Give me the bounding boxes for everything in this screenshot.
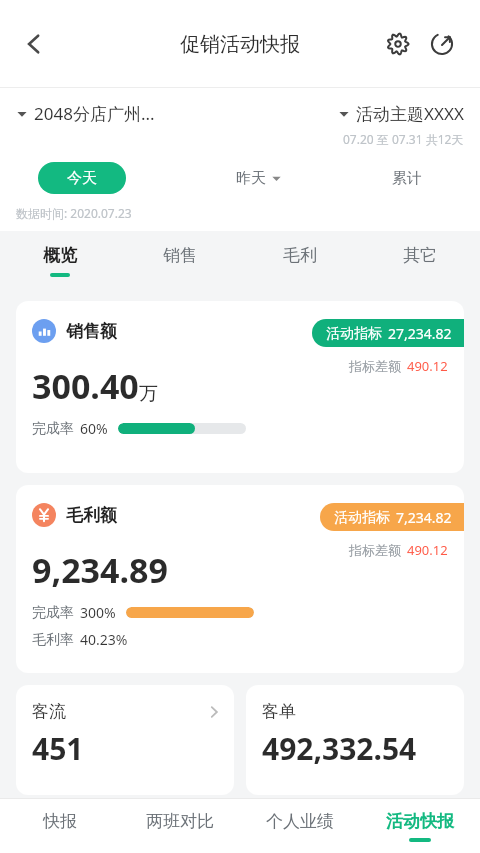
button[interactable]: 客单: [246, 685, 464, 795]
staticText: 昨天: [236, 169, 266, 188]
button[interactable]: Settings: [376, 22, 420, 66]
button[interactable]: 毛利额: [16, 485, 464, 673]
staticText: 492,332.54: [262, 728, 417, 769]
button[interactable]: 今天: [38, 162, 126, 194]
staticText: 概览: [43, 245, 77, 266]
staticText: 指标差额: [349, 358, 401, 374]
staticText: 27,234.82: [388, 324, 452, 343]
staticText: 个人业绩: [266, 811, 334, 832]
staticText: 9,234.89: [32, 547, 168, 593]
staticText: 销售: [163, 245, 197, 266]
staticText: 07.20 至 07.31 共12天: [343, 131, 464, 147]
staticText: 毛利率: [32, 631, 74, 649]
staticText: 活动指标: [334, 509, 390, 527]
staticText: 毛利额: [66, 505, 117, 526]
staticText: 万: [139, 382, 158, 406]
button[interactable]: 活动快报: [360, 799, 480, 853]
staticText: 销售额: [66, 321, 117, 342]
staticText: 300%: [80, 603, 116, 622]
staticText: 毛利: [283, 245, 317, 266]
staticText: 完成率: [32, 420, 74, 438]
button[interactable]: 快报: [0, 799, 120, 853]
button[interactable]: 概览: [0, 231, 120, 291]
staticText: 促销活动快报: [180, 32, 300, 57]
staticText: 其它: [403, 245, 437, 266]
staticText: 快报: [43, 811, 77, 832]
button[interactable]: 2048分店广州...: [16, 102, 155, 125]
staticText: 活动指标: [326, 325, 382, 343]
staticText: 数据时间: 2020.07.23: [16, 205, 132, 221]
button[interactable]: 个人业绩: [240, 799, 360, 853]
staticText: 客单: [262, 701, 296, 722]
staticText: 60%: [80, 419, 108, 438]
button[interactable]: 客流: [16, 685, 234, 795]
staticText: 今天: [67, 169, 97, 188]
staticText: 300.40: [32, 363, 139, 409]
staticText: 活动主题XXXX: [356, 102, 464, 125]
button[interactable]: 毛利: [240, 231, 360, 291]
button[interactable]: 两班对比: [120, 799, 240, 853]
button[interactable]: 活动主题XXXX: [338, 102, 464, 125]
staticText: 7,234.82: [396, 508, 452, 527]
button[interactable]: Share: [420, 22, 464, 66]
staticText: 490.12: [407, 357, 448, 375]
staticText: 完成率: [32, 604, 74, 622]
button[interactable]: 昨天: [236, 169, 282, 188]
button[interactable]: 累计: [392, 169, 422, 188]
staticText: 累计: [392, 169, 422, 188]
button[interactable]: Back: [6, 16, 62, 72]
button[interactable]: 其它: [360, 231, 480, 291]
staticText: 客流: [32, 701, 66, 722]
button[interactable]: 销售额: [16, 301, 464, 473]
staticText: 2048分店广州...: [34, 102, 155, 125]
staticText: 40.23%: [80, 630, 128, 649]
staticText: 指标差额: [349, 542, 401, 558]
staticText: 451: [32, 728, 84, 769]
staticText: 活动快报: [386, 811, 454, 832]
button[interactable]: 销售: [120, 231, 240, 291]
staticText: 两班对比: [146, 811, 214, 832]
staticText: 490.12: [407, 541, 448, 559]
